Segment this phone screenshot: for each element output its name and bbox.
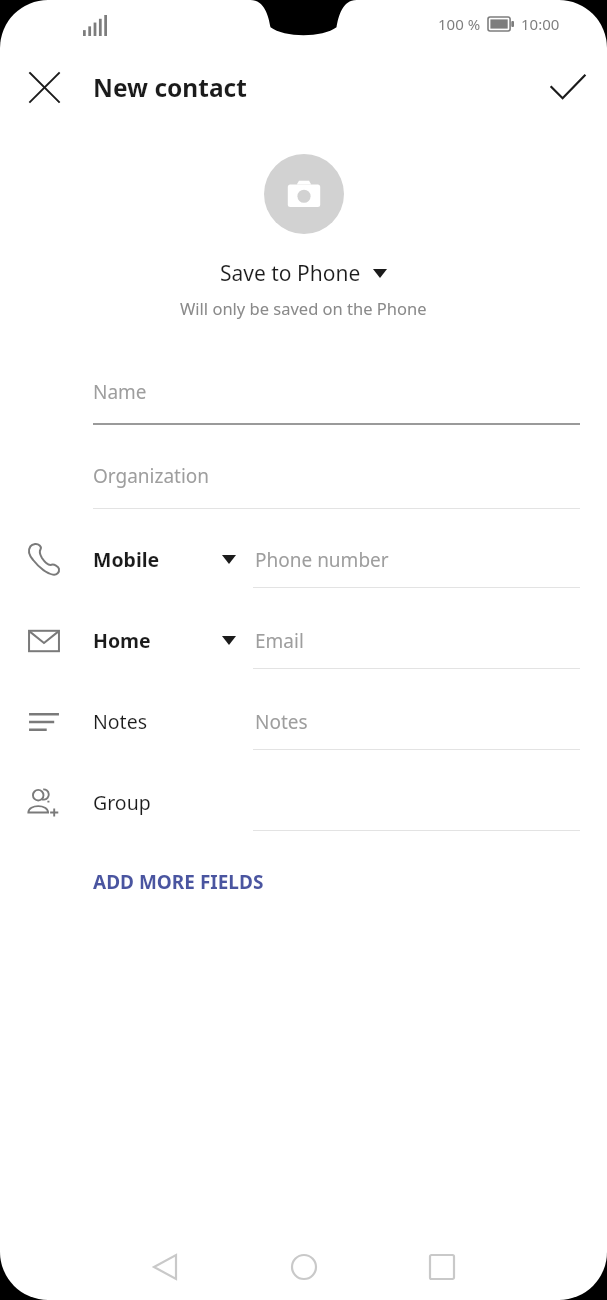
button[interactable]: ADD MORE FIELDS [0,863,284,905]
staticText: 10:00 [521,14,560,34]
button[interactable]: Close [16,59,72,115]
staticText: Phone number [255,547,389,573]
button[interactable]: Add photo [264,154,344,234]
staticText: Home [93,627,151,654]
staticText: Email [255,628,304,654]
staticText: Mobile [93,546,160,573]
button[interactable]: Recent apps [412,1237,472,1297]
staticText: Will only be saved on the Phone [180,297,427,319]
staticText: Group [93,789,151,816]
staticText: Notes [93,708,147,735]
button[interactable]: Save [539,59,595,115]
staticText: Save to Phone [220,259,361,288]
staticText: Notes [255,709,308,735]
button[interactable]: Phone type [0,525,607,606]
button[interactable]: Back [135,1237,195,1297]
button[interactable]: Save to Phone [210,256,397,291]
button[interactable]: Email type [0,606,607,687]
staticText: Organization [93,463,210,489]
button[interactable]: Home [274,1237,334,1297]
staticText: Name [93,379,147,405]
staticText: New contact [93,71,247,104]
staticText: ADD MORE FIELDS [93,869,264,895]
button[interactable]: Name [0,357,607,441]
button[interactable]: Notes [0,687,607,768]
button[interactable]: Group [0,768,607,849]
button[interactable]: Organization [0,441,607,525]
staticText: 100 % [438,14,481,34]
